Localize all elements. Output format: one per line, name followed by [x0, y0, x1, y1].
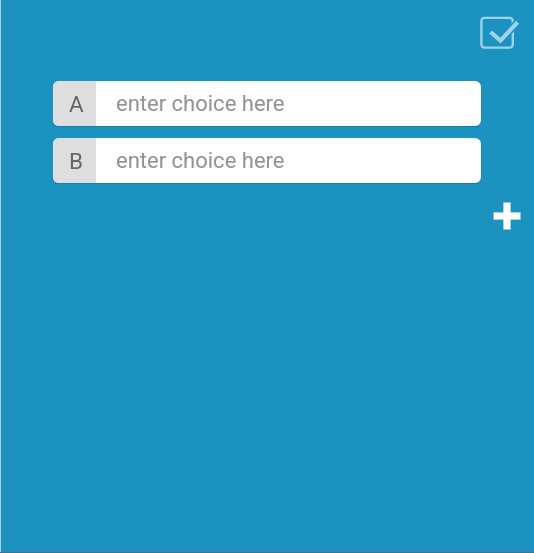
- staticText: B: [69, 148, 84, 174]
- staticText: A: [69, 91, 84, 117]
- button[interactable]: Done: [468, 4, 528, 64]
- staticText: enter choice here: [116, 91, 285, 117]
- staticText: enter choice here: [116, 148, 285, 174]
- button[interactable]: B: [53, 138, 481, 183]
- button[interactable]: Add choice: [487, 196, 527, 236]
- button[interactable]: A: [53, 81, 481, 126]
